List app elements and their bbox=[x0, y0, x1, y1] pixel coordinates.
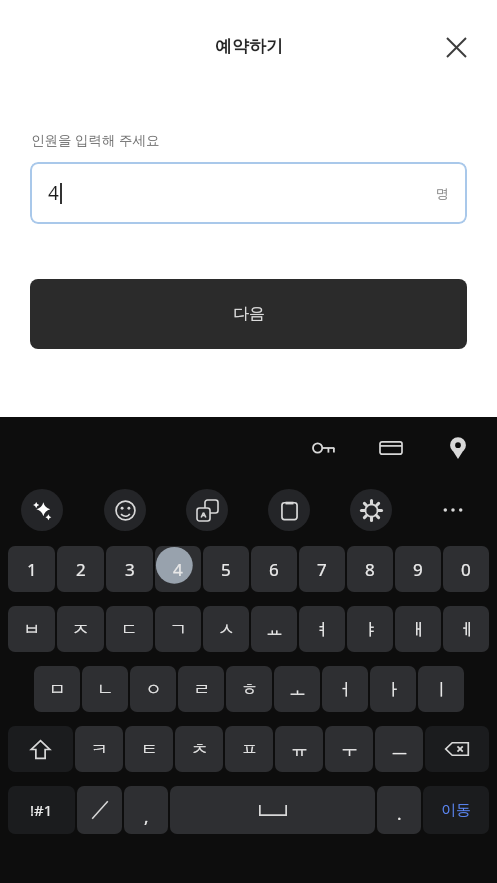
staticText: 6 bbox=[269, 558, 279, 581]
staticText: ㅈ bbox=[72, 619, 89, 640]
staticText: 인원을 입력해 주세요 bbox=[31, 131, 160, 149]
staticText: ㅏ bbox=[385, 679, 402, 700]
button[interactable]: 1 bbox=[8, 546, 55, 592]
staticText: ㅐ bbox=[410, 619, 427, 640]
button[interactable]: Addresses bbox=[436, 426, 480, 470]
staticText: ㄱ bbox=[170, 619, 187, 640]
button[interactable]: 9 bbox=[395, 546, 441, 592]
button[interactable]: ㅋ bbox=[75, 726, 123, 772]
staticText: ㅣ bbox=[433, 679, 450, 700]
staticText: ㅜ bbox=[341, 739, 358, 760]
button[interactable]: Language toggle bbox=[77, 786, 122, 834]
staticText: 2 bbox=[76, 558, 86, 581]
button[interactable]: !#1 bbox=[8, 786, 75, 834]
staticText: ㅂ bbox=[23, 619, 40, 640]
button[interactable]: ㄷ bbox=[106, 606, 153, 652]
staticText: 3 bbox=[125, 558, 135, 581]
staticText: 4 bbox=[173, 558, 183, 581]
staticText: ㅌ bbox=[141, 739, 158, 760]
button[interactable]: ㅣ bbox=[418, 666, 464, 712]
staticText: ㅔ bbox=[458, 619, 475, 640]
staticText: ㅁ bbox=[49, 679, 66, 700]
button[interactable]: ㄹ bbox=[178, 666, 224, 712]
button[interactable]: 이동 bbox=[423, 786, 489, 834]
staticText: 이동 bbox=[441, 801, 471, 820]
staticText: ㅑ bbox=[362, 619, 379, 640]
button[interactable]: , bbox=[124, 786, 168, 834]
staticText: 8 bbox=[365, 558, 375, 581]
button[interactable]: More options bbox=[432, 489, 474, 531]
staticText: ㄴ bbox=[97, 679, 114, 700]
staticText: ㅕ bbox=[314, 619, 331, 640]
button[interactable]: ㅇ bbox=[130, 666, 176, 712]
button[interactable]: ㅓ bbox=[322, 666, 368, 712]
button[interactable]: ㅏ bbox=[370, 666, 416, 712]
staticText: ㅇ bbox=[145, 679, 162, 700]
button[interactable]: Translate bbox=[186, 489, 228, 531]
button[interactable]: 8 bbox=[347, 546, 393, 592]
staticText: 5 bbox=[221, 558, 231, 581]
button[interactable]: Close bbox=[438, 29, 474, 65]
staticText: 예약하기 bbox=[215, 36, 283, 57]
staticText: . bbox=[397, 802, 402, 825]
staticText: 9 bbox=[413, 558, 423, 581]
button[interactable]: Shift bbox=[8, 726, 73, 772]
staticText: !#1 bbox=[30, 800, 53, 820]
button[interactable]: Space bbox=[170, 786, 375, 834]
button[interactable]: ㅠ bbox=[275, 726, 323, 772]
button[interactable]: 4 bbox=[155, 546, 201, 592]
button[interactable]: ㅍ bbox=[225, 726, 273, 772]
button[interactable]: Clipboard bbox=[268, 489, 310, 531]
button[interactable]: ㅗ bbox=[274, 666, 320, 712]
button[interactable]: ㅂ bbox=[8, 606, 55, 652]
button[interactable]: Emoji bbox=[104, 489, 146, 531]
staticText: , bbox=[144, 805, 149, 828]
staticText: ㅍ bbox=[241, 739, 258, 760]
button[interactable]: Settings bbox=[350, 489, 392, 531]
staticText: ㅊ bbox=[191, 739, 208, 760]
button[interactable]: ㄱ bbox=[155, 606, 201, 652]
staticText: ㅋ bbox=[91, 739, 108, 760]
staticText: ㅛ bbox=[266, 619, 283, 640]
button[interactable]: ㅜ bbox=[325, 726, 373, 772]
staticText: 7 bbox=[317, 558, 327, 581]
button[interactable]: ㄴ bbox=[82, 666, 128, 712]
button[interactable]: ㅅ bbox=[203, 606, 249, 652]
button[interactable]: Smart compose bbox=[21, 489, 63, 531]
button[interactable]: 5 bbox=[203, 546, 249, 592]
staticText: ㅅ bbox=[218, 619, 235, 640]
staticText: ㅓ bbox=[337, 679, 354, 700]
staticText: ㅎ bbox=[241, 679, 258, 700]
button[interactable]: ㅑ bbox=[347, 606, 393, 652]
button[interactable]: ㅐ bbox=[395, 606, 441, 652]
staticText: ㅡ bbox=[391, 739, 408, 760]
staticText: 0 bbox=[461, 558, 471, 581]
staticText: 다음 bbox=[233, 304, 265, 324]
button[interactable]: 6 bbox=[251, 546, 297, 592]
button[interactable]: ㅎ bbox=[226, 666, 272, 712]
button[interactable]: 4 bbox=[30, 162, 467, 224]
staticText: ㄷ bbox=[121, 619, 138, 640]
button[interactable]: 0 bbox=[443, 546, 489, 592]
staticText: ㄹ bbox=[193, 679, 210, 700]
button[interactable]: 2 bbox=[57, 546, 104, 592]
button[interactable]: Payment cards bbox=[369, 426, 413, 470]
staticText: 명 bbox=[436, 185, 449, 201]
button[interactable]: ㅌ bbox=[125, 726, 173, 772]
button[interactable]: ㅔ bbox=[443, 606, 489, 652]
staticText: 4 bbox=[48, 180, 59, 206]
button[interactable]: ㅈ bbox=[57, 606, 104, 652]
button[interactable]: 7 bbox=[299, 546, 345, 592]
button[interactable]: 다음 bbox=[30, 279, 467, 349]
button[interactable]: . bbox=[377, 786, 421, 834]
button[interactable]: 3 bbox=[106, 546, 153, 592]
button[interactable]: ㅛ bbox=[251, 606, 297, 652]
button[interactable]: Passwords bbox=[302, 426, 346, 470]
button[interactable]: ㅁ bbox=[34, 666, 80, 712]
button[interactable]: Backspace bbox=[425, 726, 489, 772]
button[interactable]: ㅕ bbox=[299, 606, 345, 652]
staticText: ㅗ bbox=[289, 679, 306, 700]
staticText: ㅠ bbox=[291, 739, 308, 760]
button[interactable]: ㅊ bbox=[175, 726, 223, 772]
button[interactable]: ㅡ bbox=[375, 726, 423, 772]
